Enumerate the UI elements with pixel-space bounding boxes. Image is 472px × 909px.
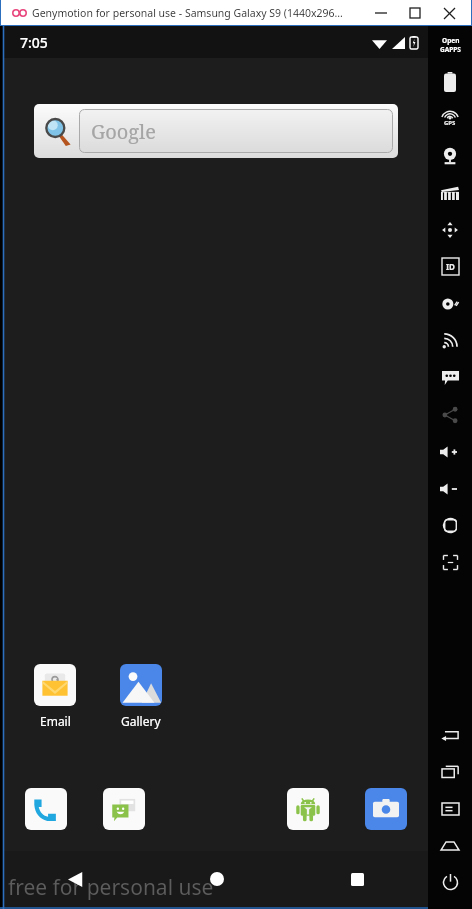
button[interactable]: Home [428, 827, 472, 864]
button[interactable]: Screen record [428, 174, 472, 211]
button[interactable]: Email [24, 663, 86, 729]
button[interactable]: Network [428, 322, 472, 359]
button[interactable]: Open GAPPS [428, 26, 472, 63]
staticText: Email [40, 713, 71, 729]
button[interactable]: Maximize [398, 1, 432, 25]
button[interactable]: Recents [428, 753, 472, 790]
button[interactable]: Back [428, 716, 472, 753]
button[interactable]: SMS [428, 359, 472, 396]
button[interactable]: Camera [364, 787, 408, 831]
button[interactable]: Messaging [102, 787, 146, 831]
staticText: Open [442, 36, 460, 45]
staticText: Genymotion for personal use - Samsung Ga… [32, 6, 343, 20]
button[interactable]: Fit screen [428, 544, 472, 581]
staticText: GPS [444, 119, 456, 127]
staticText: free for personal use [8, 873, 214, 902]
staticText: Google [91, 118, 157, 145]
staticText: Gallery [121, 713, 161, 729]
button[interactable]: Power [428, 864, 472, 901]
button[interactable]: Dev Tools [286, 787, 330, 831]
button[interactable]: Disk IO [428, 285, 472, 322]
button[interactable]: Minimize [364, 1, 398, 25]
button[interactable]: Back [4, 851, 146, 907]
staticText: GAPPS [440, 45, 461, 54]
button[interactable]: Accelerometer [428, 211, 472, 248]
staticText: ID [446, 261, 455, 272]
button[interactable]: Share [428, 396, 472, 433]
button[interactable]: Volume up [428, 433, 472, 470]
staticText: 7:05 [20, 33, 48, 52]
button[interactable]: GPS [428, 100, 472, 137]
button[interactable]: Recent apps [287, 851, 428, 907]
button[interactable]: Menu [428, 790, 472, 827]
button[interactable]: Battery [428, 63, 472, 100]
button[interactable]: Identifiers [428, 248, 472, 285]
button[interactable]: Gallery [110, 663, 172, 729]
button[interactable]: Camera [428, 137, 472, 174]
button[interactable]: Home [146, 851, 287, 907]
button[interactable]: Rotate [428, 507, 472, 544]
button[interactable]: Close [432, 1, 466, 25]
button[interactable]: Google [34, 104, 398, 158]
button[interactable]: Phone [24, 787, 68, 831]
button[interactable]: Volume down [428, 470, 472, 507]
